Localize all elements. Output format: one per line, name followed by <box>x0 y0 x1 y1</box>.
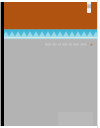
button[interactable]: Profile <box>87 0 91 13</box>
